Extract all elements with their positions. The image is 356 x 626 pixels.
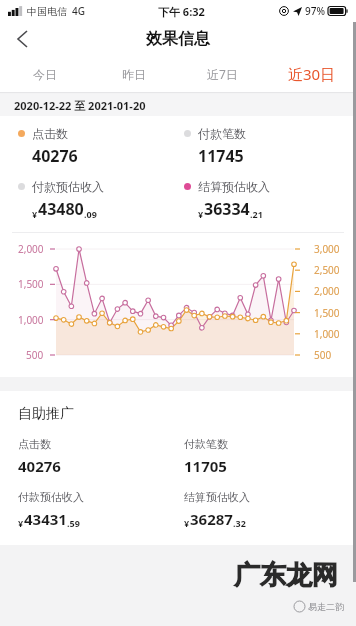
staticText: 付款笔数: [184, 437, 228, 451]
staticText: .59: [67, 517, 80, 529]
staticText: 付款预估收入: [18, 490, 84, 504]
staticText: 效果信息: [146, 29, 210, 49]
button[interactable]: Back: [0, 22, 44, 56]
staticText: 1,500: [314, 306, 340, 320]
staticText: 43431: [24, 509, 67, 529]
staticText: 点击数: [18, 437, 51, 451]
staticText: 2020-12-22 至 2021-01-20: [14, 98, 146, 113]
staticText: ¥: [18, 517, 24, 529]
button[interactable]: 近30日: [267, 56, 356, 92]
button[interactable]: 结算预估收入: [184, 179, 356, 220]
staticText: 易走二韵: [308, 601, 344, 612]
staticText: .09: [84, 208, 97, 220]
staticText: 昨日: [122, 67, 146, 82]
staticText: 自助推广: [18, 405, 74, 423]
staticText: 近30日: [288, 64, 336, 84]
staticText: 下午 6:32: [158, 4, 205, 19]
button[interactable]: 付款预估收入: [18, 179, 178, 220]
staticText: 40276: [18, 456, 61, 476]
staticText: 今日: [33, 67, 57, 82]
button[interactable]: 近7日: [178, 56, 267, 92]
staticText: 500: [26, 348, 44, 362]
staticText: .21: [250, 208, 263, 220]
staticText: ¥: [32, 208, 38, 220]
staticText: 结算预估收入: [184, 490, 250, 504]
staticText: ¥: [184, 517, 190, 529]
staticText: 4G: [72, 4, 85, 18]
staticText: 3,000: [314, 242, 340, 256]
staticText: 43480: [38, 198, 84, 220]
staticText: 500: [314, 348, 332, 362]
button[interactable]: 点击数: [18, 126, 178, 167]
staticText: 中国电信: [27, 5, 67, 18]
staticText: 2,000: [18, 242, 44, 256]
staticText: 1,000: [314, 327, 340, 341]
staticText: 2,000: [314, 284, 340, 298]
staticText: 近7日: [207, 66, 238, 82]
button[interactable]: 结算预估收入: [184, 490, 356, 529]
staticText: 40276: [32, 145, 78, 167]
button[interactable]: 昨日: [89, 56, 178, 92]
staticText: 1,500: [18, 277, 44, 291]
staticText: 36287: [190, 509, 233, 529]
button[interactable]: 点击数: [18, 437, 178, 476]
staticText: 付款预估收入: [32, 179, 104, 194]
staticText: 广东龙网: [234, 559, 338, 592]
staticText: .32: [233, 517, 246, 529]
staticText: 2,500: [314, 263, 340, 277]
staticText: 结算预估收入: [198, 179, 270, 194]
staticText: 11705: [184, 456, 227, 476]
staticText: 付款笔数: [198, 126, 246, 141]
staticText: 点击数: [32, 126, 68, 141]
staticText: 36334: [204, 198, 250, 220]
button[interactable]: 付款笔数: [184, 126, 356, 167]
staticText: ¥: [198, 208, 204, 220]
button[interactable]: 付款笔数: [184, 437, 356, 476]
staticText: 11745: [198, 145, 244, 167]
staticText: 1,000: [18, 313, 44, 327]
staticText: 97%: [305, 4, 325, 18]
button[interactable]: 今日: [0, 56, 89, 92]
button[interactable]: 付款预估收入: [18, 490, 178, 529]
